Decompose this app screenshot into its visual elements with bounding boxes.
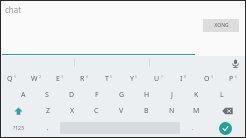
button[interactable]: Backspace xyxy=(209,103,246,119)
button[interactable]: J xyxy=(159,87,184,103)
button[interactable]: M xyxy=(184,103,209,119)
staticText: D xyxy=(69,90,75,100)
button[interactable]: G xyxy=(109,87,134,103)
staticText: W xyxy=(31,74,38,84)
staticText: Y xyxy=(130,74,134,84)
staticText: T xyxy=(105,74,109,84)
staticText: B xyxy=(144,106,149,116)
staticText: L xyxy=(220,90,224,100)
staticText: R xyxy=(80,74,85,84)
staticText: V xyxy=(119,106,124,116)
staticText: chat xyxy=(5,4,22,15)
button[interactable]: L xyxy=(209,87,234,103)
button[interactable] xyxy=(0,56,74,70)
button[interactable]: K xyxy=(184,87,209,103)
staticText: 4 xyxy=(86,74,89,79)
button[interactable]: T xyxy=(96,71,121,87)
button[interactable]: Send xyxy=(204,119,246,137)
staticText: 9 xyxy=(211,74,214,79)
button[interactable]: Shift xyxy=(0,103,36,119)
button[interactable]: E xyxy=(48,71,72,87)
staticText: Q xyxy=(7,74,13,84)
staticText: C xyxy=(94,106,99,116)
button[interactable]: N xyxy=(159,103,184,119)
staticText: I xyxy=(180,74,183,84)
button[interactable]: O xyxy=(196,71,221,87)
button[interactable]: B xyxy=(134,103,159,119)
staticText: . xyxy=(192,124,194,132)
button[interactable]: Q xyxy=(0,71,24,87)
staticText: ?123 xyxy=(13,125,24,132)
staticText: Z xyxy=(46,106,51,116)
staticText: 2 xyxy=(39,74,42,79)
staticText: X xyxy=(70,106,75,116)
button[interactable]: Voice input xyxy=(229,57,241,69)
staticText: 8 xyxy=(184,74,187,79)
button[interactable]: X xyxy=(60,103,84,119)
staticText: J xyxy=(171,90,173,100)
staticText: U xyxy=(154,74,160,84)
staticText: 5 xyxy=(110,74,113,79)
staticText: , xyxy=(47,124,49,132)
staticText: E xyxy=(56,74,60,84)
button[interactable]: Z xyxy=(36,103,60,119)
staticText: 6 xyxy=(135,74,138,79)
button[interactable]: R xyxy=(72,71,96,87)
button[interactable]: U xyxy=(146,71,171,87)
button[interactable]: W xyxy=(24,71,48,87)
button[interactable]: I xyxy=(171,71,196,87)
staticText: 1 xyxy=(14,74,17,79)
button[interactable]: H xyxy=(134,87,159,103)
button[interactable]: Y xyxy=(121,71,146,87)
staticText: 7 xyxy=(161,74,164,79)
button[interactable]: A xyxy=(11,87,35,103)
staticText: 3 xyxy=(61,74,64,79)
staticText: N xyxy=(169,106,175,116)
button[interactable]: F xyxy=(84,87,109,103)
staticText: F xyxy=(95,90,99,100)
button[interactable]: S xyxy=(35,87,59,103)
button[interactable]: D xyxy=(59,87,84,103)
staticText: 0 xyxy=(235,74,238,79)
staticText: O xyxy=(204,74,210,84)
staticText: M xyxy=(193,106,200,116)
staticText: G xyxy=(119,90,125,100)
button[interactable]: P xyxy=(221,71,246,87)
staticText: K xyxy=(194,90,199,100)
button[interactable]: XONG xyxy=(203,19,239,32)
button[interactable]: , xyxy=(36,119,59,137)
button[interactable]: ?123 xyxy=(0,119,36,137)
button[interactable]: C xyxy=(84,103,109,119)
staticText: S xyxy=(45,90,49,100)
staticText: A xyxy=(21,90,26,100)
staticText: P xyxy=(229,74,234,84)
button[interactable]: V xyxy=(109,103,134,119)
staticText: XONG xyxy=(214,22,229,29)
staticText: H xyxy=(144,90,150,100)
